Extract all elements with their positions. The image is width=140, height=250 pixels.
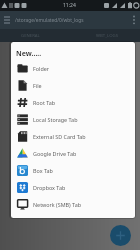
button[interactable]: Google Drive Tab [11,145,135,162]
staticText: Folder [33,65,50,72]
button[interactable]: Box Tab [11,162,135,179]
button[interactable] [110,225,131,246]
staticText: WBT_LOGS [96,32,119,38]
staticText: GENERAL [21,32,40,38]
button[interactable]: Root Tab [11,94,135,111]
button[interactable]: File [11,77,135,94]
staticText: Root Tab [33,99,56,106]
staticText: Network (SMB) Tab [33,201,81,208]
staticText: New..... [16,49,42,59]
staticText: Dropbox Tab [33,184,66,191]
button[interactable]: External SD Card Tab [11,128,135,145]
button[interactable]: Local Storage Tab [11,111,135,128]
staticText: External SD Card Tab [33,133,86,140]
staticText: Local Storage Tab [33,116,78,123]
button[interactable]: Folder [11,60,135,77]
staticText: Box Tab [33,167,53,174]
staticText: File [33,82,42,89]
button[interactable]: Network (SMB) Tab [11,196,135,213]
staticText: 11:24 [63,2,76,9]
button[interactable]: Dropbox Tab [11,179,135,196]
staticText: /storage/emulated/0/wbt_logs [15,17,84,24]
staticText: Google Drive Tab [33,150,77,157]
